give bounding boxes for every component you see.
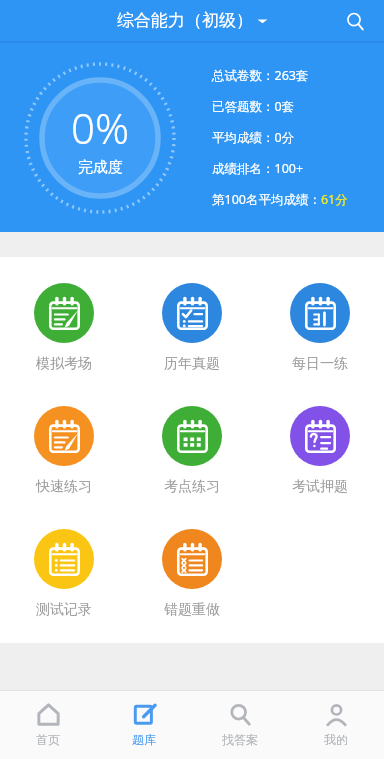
- staticText: 首页: [36, 732, 60, 747]
- staticText: 考试押题: [292, 478, 348, 496]
- button[interactable]: 模拟考场: [28, 281, 100, 375]
- staticText: 考点练习: [164, 478, 220, 496]
- staticText: 历年真题: [164, 355, 220, 373]
- staticText: 已答题数：0套: [212, 98, 295, 115]
- button[interactable]: 测试记录: [28, 527, 100, 621]
- staticText: 平均成绩：0分: [212, 129, 295, 146]
- staticText: 完成度: [78, 158, 123, 177]
- staticText: 总试卷数：263套: [212, 67, 309, 84]
- button[interactable]: Search: [338, 4, 372, 38]
- staticText: 模拟考场: [36, 355, 92, 373]
- staticText: 综合能力（初级）: [117, 10, 253, 31]
- button[interactable]: 每日一练: [284, 281, 356, 375]
- staticText: 测试记录: [36, 601, 92, 619]
- staticText: 快速练习: [36, 478, 92, 496]
- staticText: 0%: [71, 99, 130, 156]
- button[interactable]: 题库: [96, 691, 192, 759]
- staticText: 每日一练: [292, 355, 348, 373]
- staticText: 错题重做: [164, 601, 220, 619]
- staticText: 题库: [132, 732, 156, 747]
- button[interactable]: 快速练习: [28, 404, 100, 498]
- staticText: 第100名平均成绩：61分: [212, 191, 348, 208]
- button[interactable]: 考试押题: [284, 404, 356, 498]
- button[interactable]: 找答案: [192, 691, 288, 759]
- button[interactable]: 错题重做: [156, 527, 228, 621]
- button[interactable]: 历年真题: [156, 281, 228, 375]
- button[interactable]: 考点练习: [156, 404, 228, 498]
- staticText: 我的: [324, 732, 348, 747]
- staticText: 成绩排名：100+: [212, 160, 304, 177]
- button[interactable]: 我的: [288, 691, 384, 759]
- staticText: 找答案: [222, 732, 258, 747]
- button[interactable]: 首页: [0, 691, 96, 759]
